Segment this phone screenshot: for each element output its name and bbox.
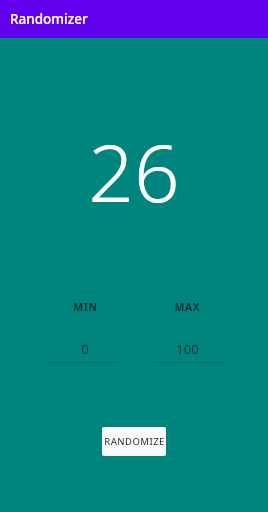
staticText: 100 [176,340,199,358]
staticText: MIN [73,300,98,314]
button[interactable]: 100 [150,340,224,358]
staticText: 26 [88,116,180,225]
staticText: RANDOMIZE [104,435,165,448]
staticText: 0 [81,340,89,358]
button[interactable]: 0 [48,340,122,358]
staticText: Randomizer [10,10,88,28]
button[interactable]: RANDOMIZE [102,427,166,456]
staticText: MAX [174,300,201,314]
